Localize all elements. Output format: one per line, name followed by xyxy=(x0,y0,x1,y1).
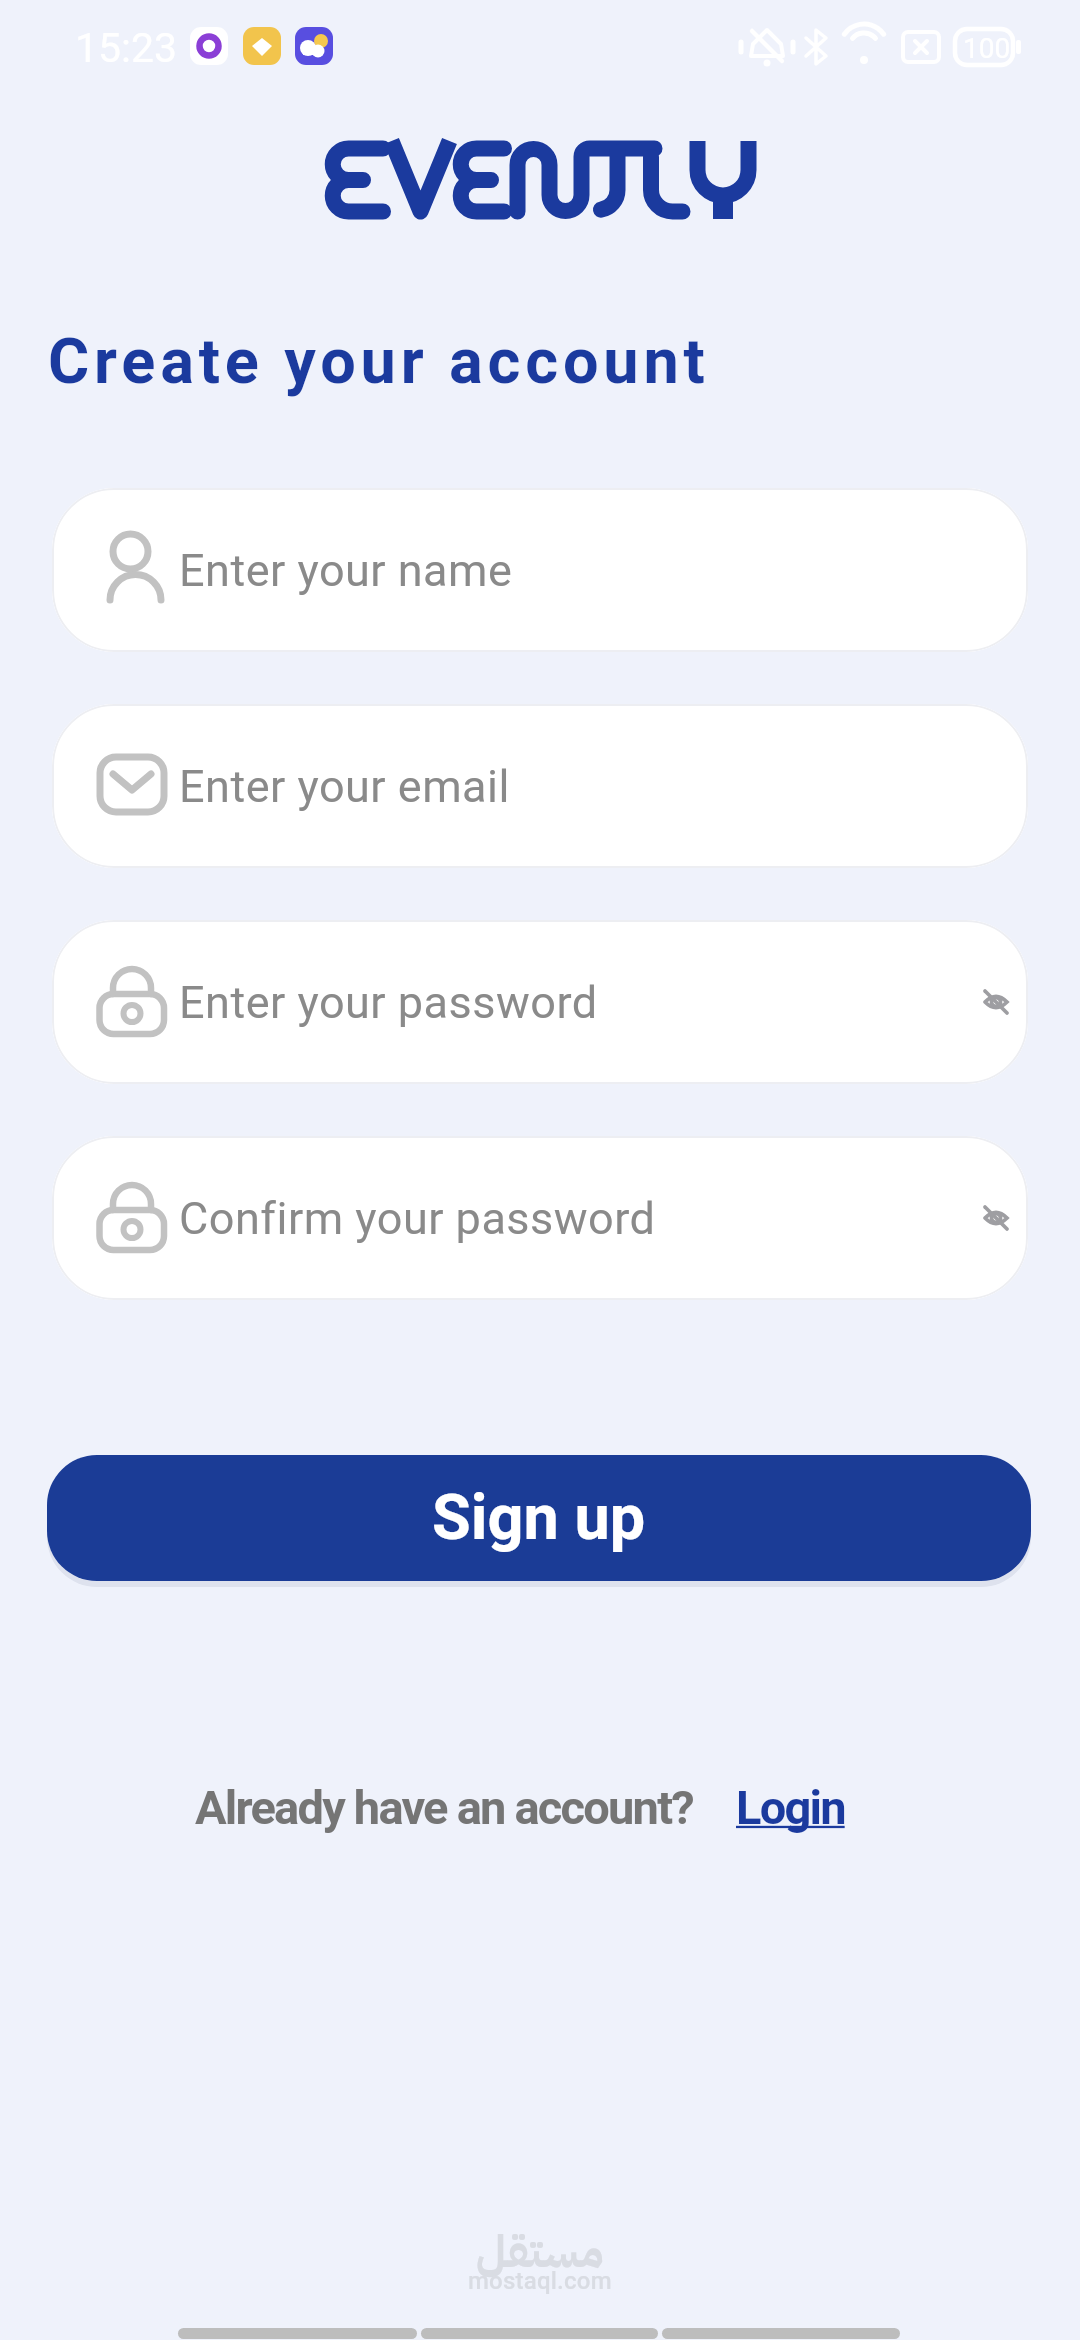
staticText: 15:23 xyxy=(75,24,178,72)
button[interactable]: Enter your email xyxy=(52,704,1028,868)
staticText: Confirm your password xyxy=(179,1192,656,1245)
button[interactable]: Sign up xyxy=(47,1455,1031,1581)
staticText: 100 xyxy=(963,32,1011,65)
staticText: mostaql.com xyxy=(468,2267,612,2295)
button[interactable]: Confirm your password xyxy=(52,1136,1028,1300)
staticText: Sign up xyxy=(432,1481,646,1555)
staticText: Enter your name xyxy=(179,544,513,597)
staticText: Already have an account? xyxy=(195,1780,693,1835)
button[interactable]: Enter your name xyxy=(52,488,1028,652)
staticText: Enter your password xyxy=(179,976,598,1029)
button[interactable]: Enter your password xyxy=(52,920,1028,1084)
staticText: مستقل xyxy=(476,2219,604,2285)
button[interactable]: Login xyxy=(736,1780,845,1835)
staticText: Enter your email xyxy=(179,760,510,813)
staticText: Create your account xyxy=(48,325,710,399)
